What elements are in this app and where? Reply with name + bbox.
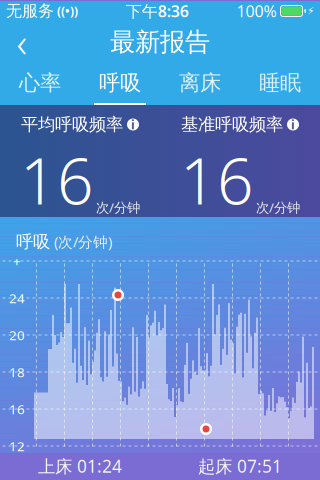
- staticText: 24: [9, 289, 25, 307]
- staticText: 次/分钟: [256, 198, 300, 216]
- staticText: 无服务: [6, 1, 54, 21]
- staticText: 基准呼吸频率: [181, 114, 283, 135]
- staticText: (次/分钟): [54, 232, 112, 251]
- staticText: +: [13, 252, 21, 270]
- staticText: ⚡︎: [307, 5, 314, 17]
- staticText: 16: [180, 137, 254, 222]
- staticText: i: [131, 116, 135, 132]
- button[interactable]: 睡眠: [240, 63, 320, 105]
- staticText: 18: [9, 363, 25, 381]
- staticText: 平均呼吸频率: [21, 114, 123, 135]
- button[interactable]: 心率: [0, 63, 80, 105]
- staticText: ‹: [16, 15, 27, 68]
- staticText: 心率: [19, 70, 61, 96]
- staticText: 最新报告: [110, 26, 210, 57]
- staticText: ((•)): [54, 3, 78, 19]
- button[interactable]: 离床: [160, 63, 240, 105]
- staticText: 呼吸: [99, 70, 141, 96]
- staticText: 16: [20, 137, 94, 222]
- button[interactable]: 呼吸: [80, 63, 160, 105]
- button[interactable]: 返回: [0, 22, 44, 62]
- staticText: 起床 07:51: [198, 454, 282, 477]
- staticText: i: [291, 116, 295, 132]
- staticText: 20: [9, 326, 25, 344]
- staticText: 上床 01:24: [38, 454, 122, 477]
- staticText: 16: [9, 400, 25, 418]
- staticText: 睡眠: [259, 70, 301, 96]
- staticText: 100%: [236, 0, 276, 22]
- staticText: 次/分钟: [96, 198, 140, 216]
- staticText: 12: [9, 437, 25, 455]
- staticText: 下午8:36: [126, 0, 189, 22]
- staticText: 离床: [179, 70, 221, 96]
- staticText: 呼吸: [16, 231, 50, 252]
